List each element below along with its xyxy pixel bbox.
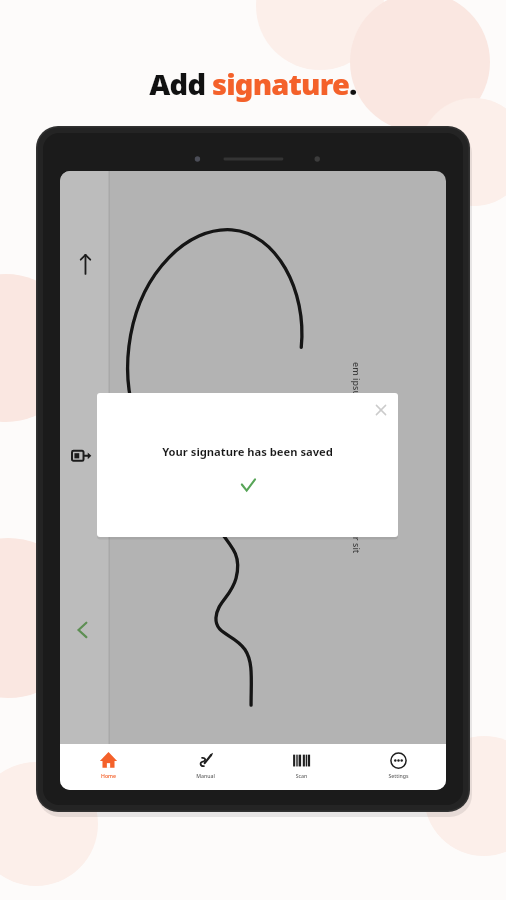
button[interactable]: Close	[371, 400, 391, 420]
staticText: Your signature has been saved	[97, 444, 398, 537]
button[interactable]: Settings	[350, 744, 446, 790]
staticText: Manual	[157, 772, 254, 790]
staticText: Scan	[253, 772, 350, 790]
button[interactable]: Home	[60, 744, 157, 790]
staticText: Add signature.	[0, 64, 506, 900]
button[interactable]: Manual	[157, 744, 254, 790]
staticText: Home	[60, 772, 157, 790]
staticText: em ipsum dolor sit, es Lorem ipsum dolor…	[351, 362, 363, 554]
button[interactable]: Scan	[253, 744, 350, 790]
staticText: Settings	[350, 772, 446, 790]
